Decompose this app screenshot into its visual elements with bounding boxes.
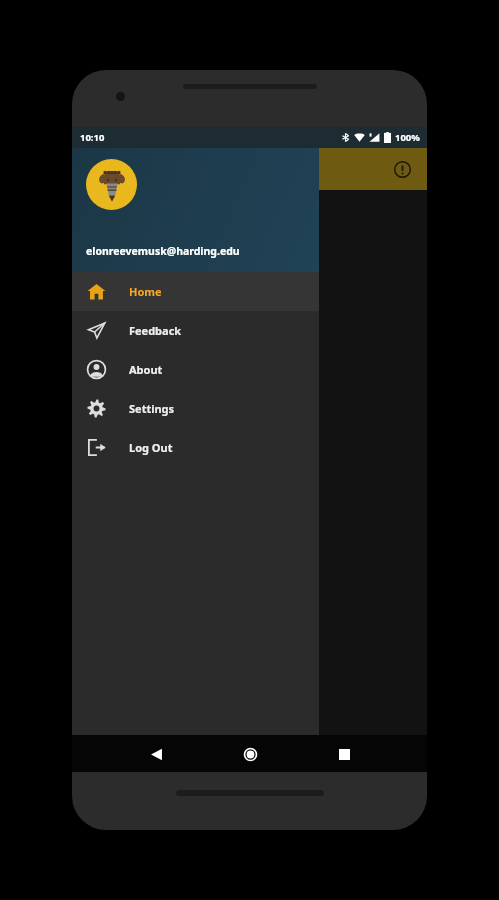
button[interactable]: Feedback bbox=[72, 311, 319, 350]
button[interactable]: Home bbox=[233, 737, 267, 771]
staticText: 100% bbox=[395, 131, 420, 144]
button[interactable]: Settings bbox=[72, 389, 319, 428]
staticText: Home bbox=[129, 284, 162, 299]
button[interactable]: Back bbox=[139, 737, 173, 771]
staticText: elonreevemusk@harding.edu bbox=[86, 244, 240, 258]
button[interactable]: Home bbox=[72, 272, 319, 311]
button[interactable]: Recent apps bbox=[327, 737, 361, 771]
button[interactable]: Info bbox=[387, 154, 417, 184]
staticText: Feedback bbox=[129, 323, 182, 338]
button[interactable]: Log Out bbox=[72, 428, 319, 467]
staticText: 10:10 bbox=[80, 131, 105, 144]
staticText: Log Out bbox=[129, 440, 173, 455]
button[interactable]: About bbox=[72, 350, 319, 389]
staticText: Settings bbox=[129, 401, 175, 416]
staticText: About bbox=[129, 362, 163, 377]
button[interactable]: Profile picture bbox=[86, 159, 137, 210]
